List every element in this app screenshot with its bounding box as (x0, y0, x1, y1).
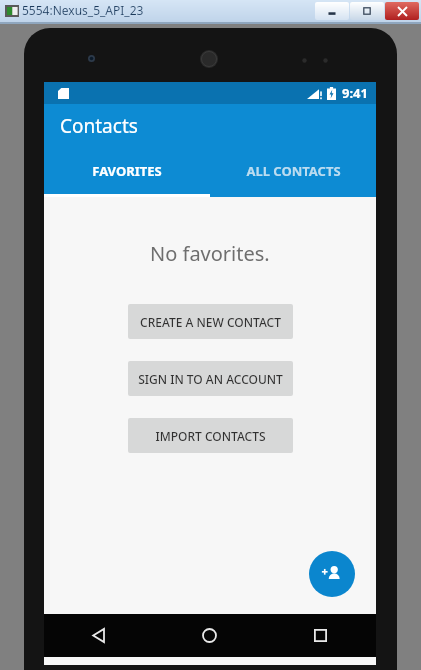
staticText: IMPORT CONTACTS (155, 428, 266, 444)
button[interactable]: IMPORT CONTACTS (128, 418, 293, 453)
staticText: ALL CONTACTS (246, 162, 341, 180)
button[interactable]: FAVORITES (44, 148, 210, 194)
button[interactable]: CREATE A NEW CONTACT (128, 304, 293, 339)
button[interactable]: Back (44, 614, 154, 657)
staticText: No favorites. (150, 240, 270, 267)
button[interactable]: Home (154, 614, 265, 657)
staticText: 9:41 (342, 84, 368, 102)
button[interactable]: Close (385, 2, 419, 20)
staticText: Contacts (60, 113, 138, 139)
staticText: 5554:Nexus_5_API_23 (22, 2, 144, 18)
button[interactable]: Add contact (309, 551, 355, 597)
button[interactable]: SIGN IN TO AN ACCOUNT (128, 361, 293, 396)
button[interactable]: Recents (265, 614, 376, 657)
button[interactable]: ALL CONTACTS (210, 148, 376, 194)
button[interactable]: Window button (315, 2, 349, 20)
staticText: SIGN IN TO AN ACCOUNT (138, 371, 283, 387)
staticText: CREATE A NEW CONTACT (140, 314, 281, 330)
button[interactable]: Window button (350, 2, 384, 20)
staticText: FAVORITES (92, 162, 162, 180)
